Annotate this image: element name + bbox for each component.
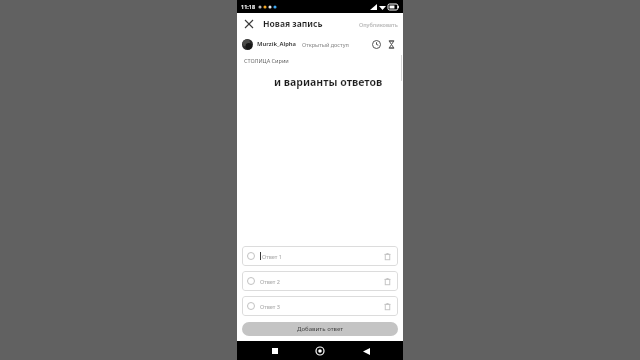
- staticText: Murzik_Alpha: [257, 40, 297, 48]
- button[interactable]: Назад: [358, 343, 374, 359]
- button[interactable]: Удалить ответ: [382, 251, 393, 262]
- button[interactable]: Закрыть: [242, 17, 256, 31]
- button[interactable]: Ответ 1: [242, 246, 398, 266]
- button[interactable]: Ответ 3: [242, 296, 398, 316]
- staticText: Добавить ответ: [297, 325, 344, 333]
- button[interactable]: Время: [370, 38, 383, 51]
- staticText: Новая запись: [263, 18, 323, 30]
- staticText: СТОЛИЦА Сирии: [244, 57, 289, 64]
- staticText: Ответ 3: [260, 303, 280, 310]
- button[interactable]: Добавить ответ: [242, 322, 398, 336]
- staticText: Опубликовать: [359, 21, 398, 28]
- button[interactable]: Удалить ответ: [382, 301, 393, 312]
- button[interactable]: Удалить ответ: [382, 276, 393, 287]
- button[interactable]: Главный экран: [312, 343, 328, 359]
- button[interactable]: Опубликовать: [359, 21, 398, 28]
- button[interactable]: Обзор: [267, 343, 283, 359]
- staticText: Ответ 2: [260, 278, 280, 285]
- button[interactable]: Таймер: [385, 38, 398, 51]
- staticText: Открытый доступ: [302, 41, 349, 48]
- staticText: Ответ 1: [262, 253, 282, 260]
- button[interactable]: Ответ 2: [242, 271, 398, 291]
- staticText: и варианты ответов: [274, 75, 383, 89]
- staticText: 11:18: [241, 3, 256, 10]
